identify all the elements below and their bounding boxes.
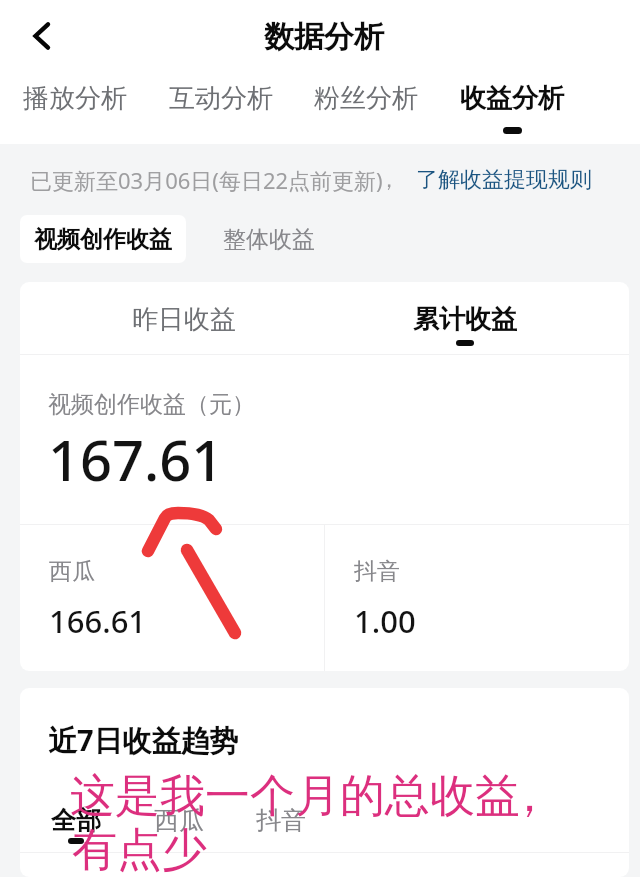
button[interactable]: 昨日收益	[112, 296, 256, 340]
staticText: 互动分析	[169, 82, 273, 115]
button[interactable]: 西瓜	[152, 805, 206, 838]
staticText: 播放分析	[23, 82, 127, 115]
button[interactable]: 互动分析	[160, 78, 282, 127]
staticText: ，	[507, 768, 552, 825]
staticText: 整体收益	[223, 225, 315, 254]
staticText: 视频创作收益	[34, 225, 172, 254]
staticText: 已更新至03月06日(每日22点前更新)	[30, 165, 383, 195]
button[interactable]: 视频创作收益	[20, 215, 186, 263]
staticText: 累计收益	[413, 303, 517, 336]
button[interactable]: 西瓜	[20, 525, 324, 671]
staticText: 收益分析	[460, 82, 564, 115]
staticText: 昨日收益	[132, 303, 236, 336]
staticText: 这是我一个月的总收益	[70, 768, 520, 825]
staticText: 1.00	[354, 600, 416, 642]
button[interactable]: 收益分析	[451, 78, 573, 134]
staticText: 有点少	[72, 822, 207, 877]
staticText: 全部	[51, 805, 101, 836]
button[interactable]: 全部	[49, 805, 103, 844]
staticText: 近7日收益趋势	[48, 720, 239, 760]
button[interactable]: 累计收益	[393, 296, 537, 346]
button[interactable]: 了解收益提现规则	[416, 166, 592, 194]
staticText: 167.61	[48, 421, 224, 497]
staticText: ，	[378, 166, 400, 194]
button[interactable]: 抖音	[325, 525, 629, 671]
button[interactable]: Back	[18, 10, 68, 60]
staticText: 了解收益提现规则	[416, 166, 592, 194]
staticText: 抖音	[256, 805, 306, 836]
staticText: 粉丝分析	[314, 82, 418, 115]
staticText: 西瓜	[154, 805, 204, 836]
button[interactable]: 整体收益	[209, 215, 329, 263]
staticText: 西瓜	[49, 557, 95, 586]
staticText: 数据分析	[264, 18, 384, 56]
button[interactable]: 抖音	[254, 805, 308, 838]
staticText: 视频创作收益（元）	[48, 390, 255, 419]
button[interactable]: 播放分析	[14, 78, 136, 127]
staticText: 抖音	[354, 557, 400, 586]
staticText: 166.61	[49, 600, 147, 642]
button[interactable]: 粉丝分析	[305, 78, 427, 127]
